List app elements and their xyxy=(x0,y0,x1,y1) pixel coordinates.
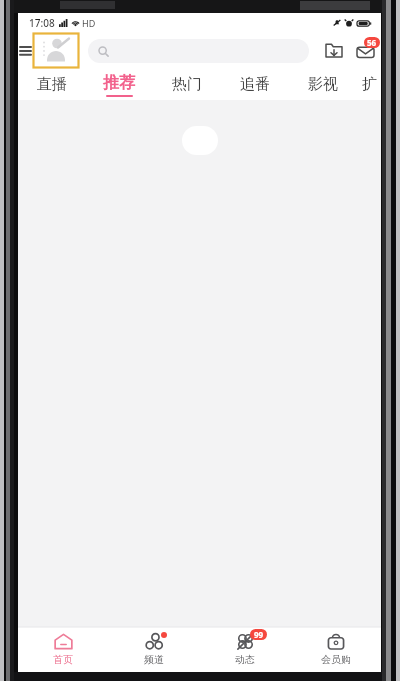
staticText: 影视 xyxy=(308,75,338,94)
button[interactable]: 直播 xyxy=(18,69,85,100)
staticText: 56 xyxy=(367,37,377,48)
staticText: 热门 xyxy=(172,75,202,94)
button[interactable]: Search xyxy=(88,39,309,63)
staticText: 99 xyxy=(254,629,264,640)
button[interactable]: 热门 xyxy=(153,69,221,100)
button[interactable]: 追番 xyxy=(221,69,289,100)
button[interactable]: 影视 xyxy=(289,69,357,100)
button[interactable]: 首页 xyxy=(18,627,108,672)
button[interactable]: 推荐 xyxy=(85,69,153,100)
staticText: 首页 xyxy=(53,653,73,666)
button[interactable]: Menu xyxy=(18,32,31,69)
staticText: 会员购 xyxy=(321,653,351,666)
staticText: 频道 xyxy=(144,653,164,666)
button[interactable]: Profile xyxy=(32,32,80,69)
staticText: 直播 xyxy=(37,75,67,94)
button[interactable]: 会员购 xyxy=(290,627,381,672)
staticText: 动态 xyxy=(235,653,255,666)
staticText: HD xyxy=(82,17,96,29)
button[interactable]: 频道 xyxy=(108,627,199,672)
staticText: 追番 xyxy=(240,75,270,94)
button[interactable]: 99 xyxy=(199,627,290,672)
staticText: 扩 xyxy=(362,75,377,94)
button[interactable]: Messages xyxy=(349,35,381,67)
staticText: 推荐 xyxy=(103,73,135,93)
button[interactable]: 扩 xyxy=(357,69,381,100)
staticText: 17:08 xyxy=(29,16,55,30)
button[interactable]: Downloads xyxy=(319,36,349,66)
